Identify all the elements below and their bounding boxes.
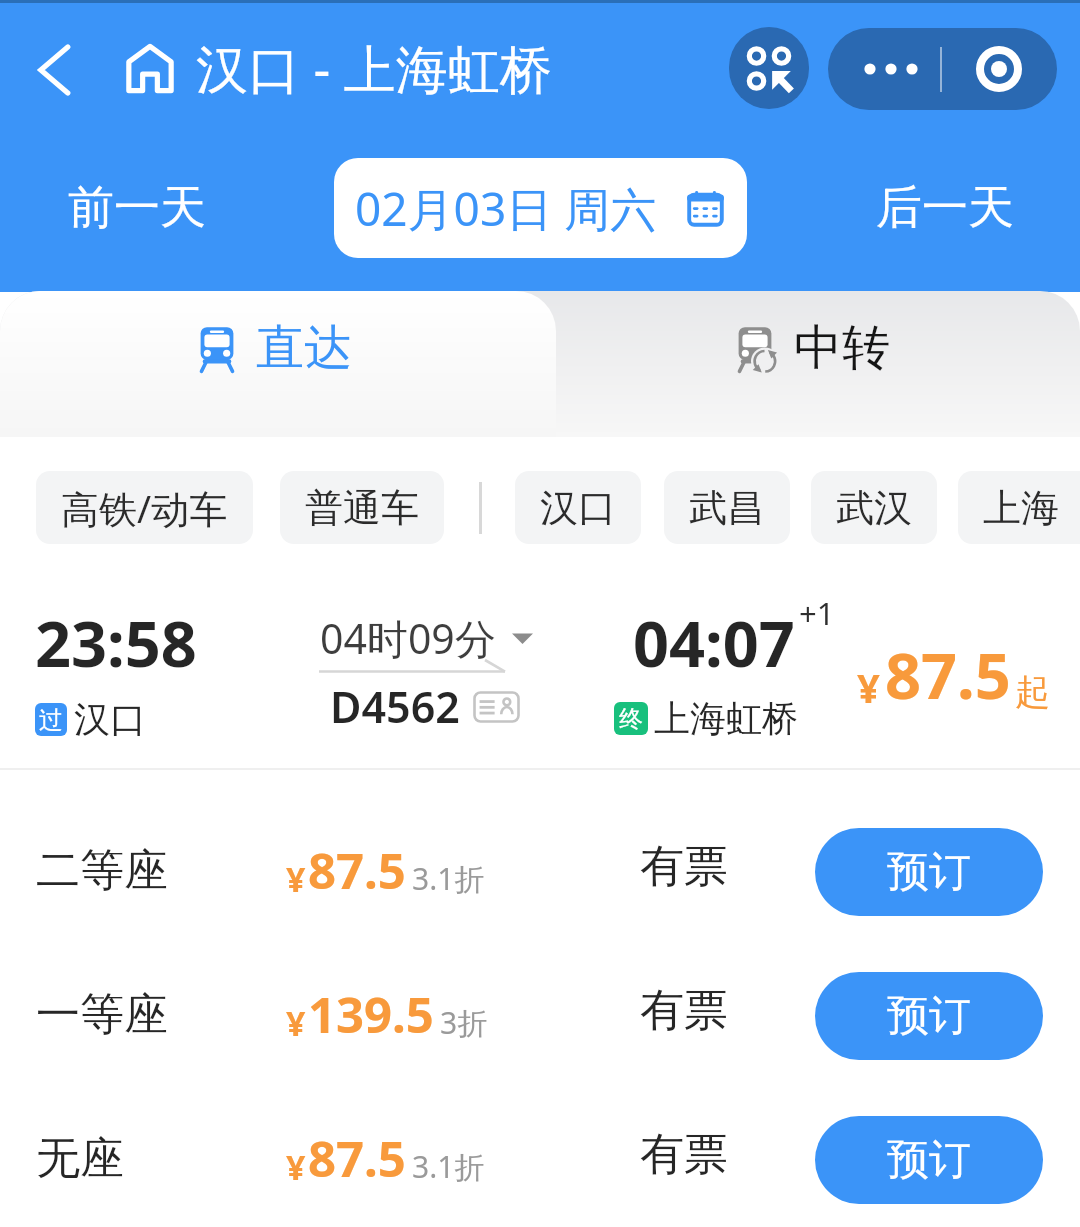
staticText: 02月03日 周六	[355, 177, 657, 240]
staticText: 23:58	[35, 600, 197, 686]
button[interactable]: 高铁/动车	[36, 471, 253, 544]
button[interactable]: 预订	[815, 972, 1043, 1060]
staticText: 中转	[794, 318, 890, 378]
staticText: 04:07	[633, 600, 795, 686]
staticText: 3.1折	[412, 1146, 485, 1187]
button[interactable]: Mini program menu	[729, 27, 809, 109]
staticText: 04时09分	[320, 610, 496, 666]
staticText: 汉口 - 上海虹桥	[196, 32, 552, 102]
staticText: ¥	[286, 1000, 306, 1046]
staticText: 汉口	[540, 484, 616, 532]
staticText: 有票	[640, 839, 728, 894]
button[interactable]: 前一天	[62, 173, 212, 243]
button[interactable]: Home	[118, 36, 182, 100]
staticText: 有票	[640, 983, 728, 1038]
staticText: 二等座	[36, 843, 168, 898]
button[interactable]: 汉口	[515, 471, 641, 544]
staticText: 预订	[887, 990, 971, 1043]
staticText: 无座	[36, 1131, 124, 1186]
button[interactable]: 预订	[815, 828, 1043, 916]
staticText: 预订	[887, 846, 971, 899]
button[interactable]: 上海虹桥	[958, 471, 1080, 544]
staticText: 过	[39, 705, 63, 735]
button[interactable]: 直达	[0, 291, 556, 437]
staticText: 有票	[640, 1127, 728, 1182]
button[interactable]	[0, 580, 1080, 768]
button[interactable]: 02月03日 周六	[334, 158, 747, 258]
staticText: ¥	[857, 660, 880, 714]
button[interactable]: 中转	[556, 291, 1080, 437]
staticText: 武汉	[836, 484, 912, 532]
staticText: 预订	[887, 1134, 971, 1187]
staticText: 139.5	[308, 981, 434, 1048]
staticText: 87.5	[308, 837, 406, 904]
button[interactable]: Close	[941, 28, 1057, 110]
staticText: 87.5	[885, 632, 1011, 718]
staticText: 汉口	[74, 697, 146, 742]
staticText: 终	[619, 704, 643, 734]
staticText: D4562	[330, 677, 460, 736]
staticText: 3折	[440, 1002, 488, 1043]
staticText: ¥	[286, 856, 306, 902]
button[interactable]: 武昌	[664, 471, 790, 544]
button[interactable]: More options	[828, 28, 941, 110]
staticText: 后一天	[876, 179, 1014, 237]
staticText: 武昌	[689, 484, 765, 532]
button[interactable]: 普通车	[280, 471, 444, 544]
staticText: 上海虹桥	[654, 696, 798, 741]
staticText: 87.5	[308, 1125, 406, 1192]
staticText: 3.1折	[412, 858, 485, 899]
button[interactable]: 后一天	[870, 173, 1020, 243]
staticText: 前一天	[68, 179, 206, 237]
staticText: +1	[799, 592, 835, 634]
button[interactable]: 武汉	[811, 471, 937, 544]
staticText: 高铁/动车	[61, 482, 228, 534]
staticText: 起	[1015, 670, 1050, 714]
staticText: 直达	[256, 318, 352, 378]
button[interactable]: Back	[20, 36, 88, 104]
staticText: ¥	[286, 1144, 306, 1190]
staticText: 普通车	[305, 484, 419, 532]
staticText: 一等座	[36, 987, 168, 1042]
staticText: 上海虹桥	[983, 484, 1080, 532]
button[interactable]: 预订	[815, 1116, 1043, 1204]
